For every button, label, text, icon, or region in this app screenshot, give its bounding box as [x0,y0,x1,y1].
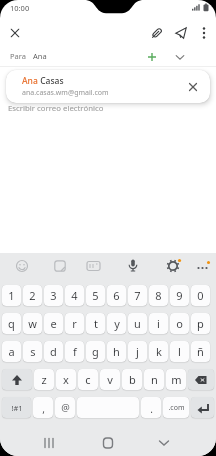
button[interactable] [77,397,139,418]
button[interactable] [172,49,188,65]
button[interactable]: 9 [170,285,189,306]
staticText: d [50,344,57,359]
staticText: b [129,372,136,387]
button[interactable]: k [149,341,168,362]
staticText: 5 [92,288,99,303]
button[interactable]: 0 [191,285,210,306]
staticText: . [150,402,153,416]
button[interactable] [85,258,103,274]
button[interactable] [98,433,118,453]
button[interactable]: g [86,341,105,362]
button[interactable]: 5 [86,285,105,306]
button[interactable] [154,433,174,453]
button[interactable]: 6 [107,285,126,306]
button[interactable]: 2 [23,285,42,306]
button[interactable] [52,258,68,274]
staticText: 6 [113,288,120,303]
button[interactable]: z [34,369,54,390]
button[interactable]: m [166,369,186,390]
staticText: i [157,316,160,331]
staticText: v [107,372,113,387]
button[interactable] [188,369,214,390]
button[interactable]: 1 [2,285,21,306]
staticText: l [178,344,181,359]
button[interactable]: .com [163,397,189,418]
staticText: 2 [29,288,36,303]
button[interactable]: 7 [128,285,147,306]
button[interactable]: h [107,341,126,362]
button[interactable] [6,24,24,42]
button[interactable]: a [2,341,21,362]
button[interactable] [148,24,166,42]
button[interactable]: 3 [44,285,63,306]
staticText: 9 [176,288,183,303]
button[interactable]: b [122,369,142,390]
staticText: r [72,316,77,331]
button[interactable]: t [86,313,105,334]
staticText: , [42,402,45,416]
button[interactable]: Ana [6,70,210,103]
staticText: s [30,344,36,359]
staticText: e [50,316,57,331]
button[interactable]: d [44,341,63,362]
button[interactable]: ñ [191,341,210,362]
button[interactable]: n [144,369,164,390]
staticText: g [92,344,99,359]
staticText: t [94,316,98,331]
button[interactable]: c [78,369,98,390]
staticText: p [197,316,204,331]
button[interactable]: !#1 [2,397,31,418]
button[interactable] [186,80,200,94]
staticText: ñ [197,344,204,359]
button[interactable] [125,257,141,275]
button[interactable]: q [2,313,21,334]
staticText: @ [61,401,70,414]
button[interactable] [144,49,160,65]
button[interactable]: v [100,369,120,390]
button[interactable]: o [170,313,189,334]
staticText: ana.casas.wm@gmail.com [22,88,109,98]
staticText: m [171,372,182,387]
staticText: 0 [197,288,204,303]
staticText: y [114,316,120,331]
button[interactable]: p [191,313,210,334]
staticText: f [73,344,77,359]
button[interactable]: x [56,369,76,390]
button[interactable]: 4 [65,285,84,306]
staticText: o [176,316,183,331]
button[interactable] [172,24,190,42]
staticText: a [8,344,15,359]
button[interactable]: s [23,341,42,362]
button[interactable]: u [128,313,147,334]
staticText: n [151,372,158,387]
button[interactable]: l [170,341,189,362]
button[interactable] [2,369,32,390]
button[interactable] [196,24,212,42]
button[interactable]: y [107,313,126,334]
button[interactable]: e [44,313,63,334]
staticText: Ana [22,75,38,87]
button[interactable]: r [65,313,84,334]
button[interactable] [191,397,214,418]
button[interactable] [14,258,30,274]
button[interactable]: w [23,313,42,334]
button[interactable] [40,433,60,453]
button[interactable]: i [149,313,168,334]
staticText: 8 [155,288,162,303]
staticText: u [134,316,141,331]
button[interactable]: 8 [149,285,168,306]
staticText: x [63,372,69,387]
staticText: 3 [50,288,57,303]
staticText: .com [168,403,185,413]
button[interactable]: j [128,341,147,362]
button[interactable]: f [65,341,84,362]
button[interactable]: . [141,397,161,418]
staticText: 10:00 [10,3,30,13]
staticText: j [136,344,139,359]
button[interactable] [195,257,213,275]
button[interactable]: , [33,397,53,418]
button[interactable] [165,257,183,275]
button[interactable]: @ [55,397,75,418]
staticText: 1 [8,288,15,303]
staticText: w [28,316,37,331]
